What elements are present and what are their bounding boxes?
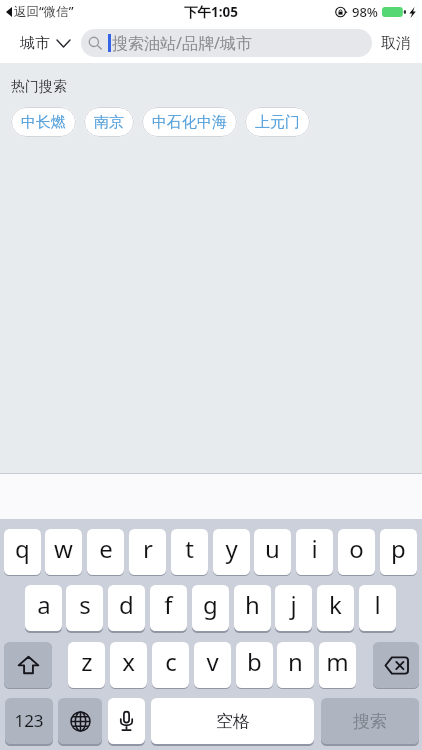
button[interactable]: s (66, 585, 103, 631)
staticText: s (79, 588, 91, 621)
button[interactable]: n (277, 642, 314, 688)
staticText: m (326, 645, 349, 678)
button[interactable]: o (338, 529, 375, 575)
button[interactable]: q (4, 529, 41, 575)
button[interactable]: g (192, 585, 229, 631)
button[interactable]: z (68, 642, 105, 688)
staticText: 空格 (216, 711, 250, 732)
staticText: b (247, 645, 262, 678)
button[interactable]: 123 (5, 698, 53, 744)
button[interactable]: y (213, 529, 250, 575)
button[interactable]: c (152, 642, 189, 688)
staticText: 城市 (20, 34, 50, 53)
staticText: 热门搜索 (11, 78, 67, 96)
staticText: 中长燃 (21, 113, 66, 132)
button[interactable]: 搜索油站/品牌/城市 (81, 29, 372, 57)
staticText: 返回“微信” (14, 3, 74, 20)
button[interactable]: 取消 (372, 27, 422, 60)
button[interactable]: 中石化中海 (142, 107, 237, 137)
button[interactable]: Switch keyboard (58, 698, 102, 744)
staticText: u (265, 532, 280, 565)
button[interactable]: 城市 (13, 27, 78, 60)
staticText: n (288, 645, 303, 678)
button[interactable]: d (108, 585, 145, 631)
button[interactable]: Backspace (373, 642, 419, 688)
button[interactable]: 空格 (151, 698, 314, 744)
button[interactable]: 上元门 (245, 107, 310, 137)
button[interactable]: h (234, 585, 271, 631)
button[interactable]: f (150, 585, 187, 631)
staticText: h (245, 588, 260, 621)
button[interactable]: r (129, 529, 166, 575)
staticText: 中石化中海 (152, 113, 227, 132)
staticText: v (206, 645, 219, 678)
staticText: a (37, 588, 51, 621)
staticText: g (203, 588, 218, 621)
staticText: 123 (14, 709, 44, 732)
staticText: 搜索油站/品牌/城市 (112, 32, 252, 54)
staticText: 南京 (94, 113, 124, 132)
staticText: x (122, 645, 135, 678)
button[interactable]: k (317, 585, 354, 631)
staticText: o (349, 532, 364, 565)
button[interactable]: 南京 (84, 107, 134, 137)
staticText: e (99, 532, 113, 565)
staticText: t (185, 532, 194, 565)
button[interactable]: b (236, 642, 273, 688)
staticText: l (374, 588, 381, 621)
button[interactable]: m (319, 642, 356, 688)
staticText: 搜索 (353, 711, 387, 732)
staticText: 取消 (381, 34, 411, 53)
staticText: f (164, 588, 173, 621)
button[interactable]: a (25, 585, 62, 631)
staticText: y (225, 532, 238, 565)
button[interactable]: i (296, 529, 333, 575)
button[interactable]: v (194, 642, 231, 688)
button[interactable]: x (110, 642, 147, 688)
staticText: c (165, 645, 177, 678)
button[interactable]: p (380, 529, 417, 575)
staticText: q (15, 532, 30, 565)
button[interactable]: j (275, 585, 312, 631)
staticText: 上元门 (255, 113, 300, 132)
staticText: r (143, 532, 153, 565)
button[interactable]: 中长燃 (11, 107, 76, 137)
staticText: k (329, 588, 342, 621)
button[interactable]: u (254, 529, 291, 575)
button[interactable]: t (171, 529, 208, 575)
staticText: d (119, 588, 134, 621)
button[interactable]: w (45, 529, 82, 575)
staticText: j (290, 588, 297, 621)
button[interactable]: l (359, 585, 396, 631)
button[interactable]: 搜索 (321, 698, 419, 744)
staticText: w (54, 532, 73, 565)
staticText: z (81, 645, 93, 678)
button[interactable]: Shift (4, 642, 52, 688)
button[interactable]: e (87, 529, 124, 575)
button[interactable]: Dictation (108, 698, 145, 744)
staticText: 下午1:05 (184, 3, 238, 21)
staticText: i (311, 532, 318, 565)
staticText: 98% (352, 3, 378, 21)
staticText: p (391, 532, 406, 565)
